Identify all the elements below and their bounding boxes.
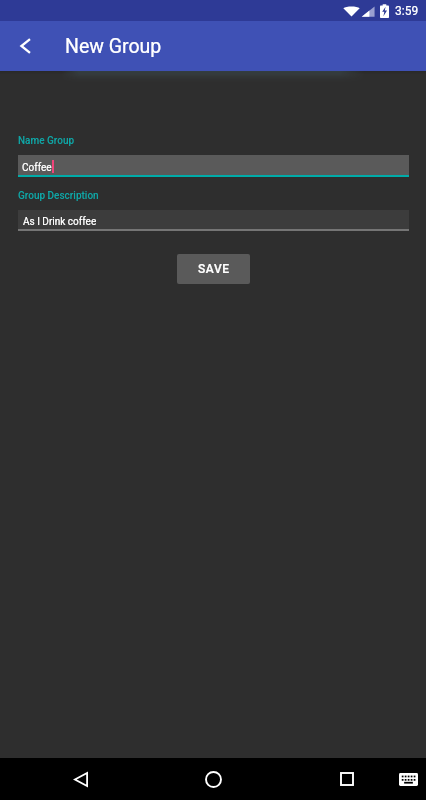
staticText: New Group — [65, 35, 162, 58]
button[interactable]: Change keyboard — [390, 758, 426, 800]
staticText: Group Description — [18, 190, 99, 202]
button[interactable]: Coffee — [18, 155, 409, 175]
staticText: SAVE — [198, 262, 230, 276]
button[interactable]: Back — [55, 758, 106, 800]
button[interactable]: Navigate up — [8, 21, 42, 71]
staticText: Name Group — [18, 135, 75, 147]
button[interactable]: SAVE — [177, 254, 250, 284]
staticText: 3:59 — [395, 4, 419, 18]
button[interactable]: As I Drink coffee — [18, 210, 409, 229]
staticText: Coffee — [22, 162, 52, 174]
button[interactable]: Recent apps — [321, 758, 372, 800]
button[interactable]: Home — [188, 758, 239, 800]
staticText: As I Drink coffee — [23, 216, 97, 228]
